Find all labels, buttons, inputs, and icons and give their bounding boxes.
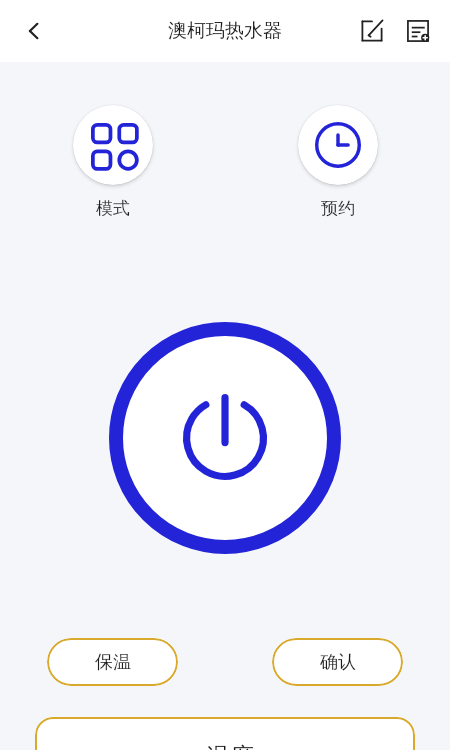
staticText: 确认	[320, 651, 356, 674]
button[interactable]: 保温	[47, 638, 178, 686]
button[interactable]: Mode	[73, 105, 153, 219]
staticText: 模式	[96, 198, 130, 219]
button[interactable]: Add scene	[398, 11, 438, 51]
staticText: 保温	[95, 651, 131, 674]
button[interactable]: 确认	[272, 638, 403, 686]
button[interactable]: Schedule	[298, 105, 378, 219]
button[interactable]: 一	[35, 717, 415, 750]
staticText: 预约	[321, 198, 355, 219]
staticText: 温度	[206, 742, 254, 750]
button[interactable]: Edit	[352, 11, 392, 51]
staticText: 澳柯玛热水器	[168, 19, 282, 43]
button[interactable]: Power	[109, 322, 341, 554]
button[interactable]: Back	[10, 7, 58, 55]
